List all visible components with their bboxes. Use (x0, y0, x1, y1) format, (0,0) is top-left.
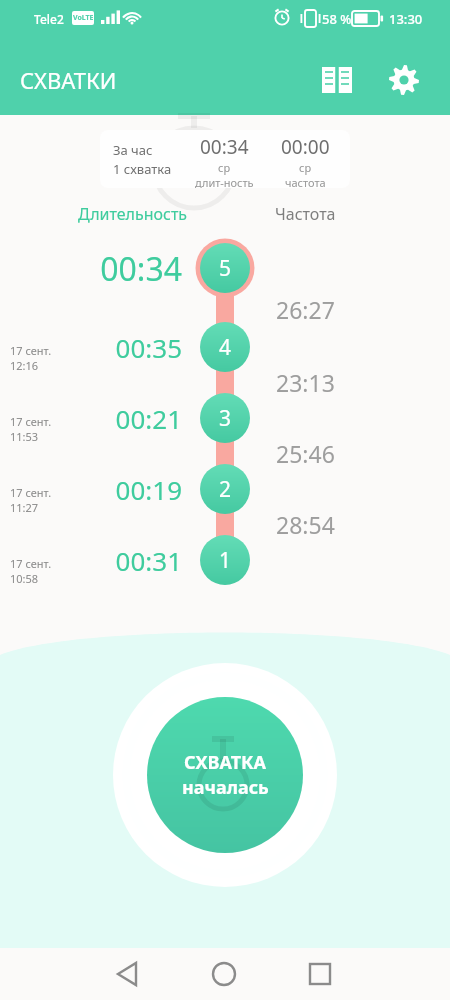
button[interactable]: Journal (311, 54, 363, 106)
staticText: 5 (219, 254, 232, 283)
staticText: 00:34 (200, 134, 249, 160)
staticText: 3 (219, 404, 232, 433)
staticText: Tele2 (34, 11, 64, 27)
staticText: 17 сент. (10, 414, 52, 429)
staticText: 17 сент. (10, 556, 52, 571)
button[interactable]: За час (100, 130, 350, 188)
staticText: 28:54 (276, 509, 335, 540)
staticText: 4 (219, 333, 232, 362)
staticText: 11:53 (10, 429, 39, 444)
staticText: ср (299, 160, 312, 175)
staticText: VoLTE (73, 13, 94, 23)
button[interactable]: Settings (378, 54, 430, 106)
staticText: 17 сент. (10, 485, 52, 500)
staticText: началась (182, 775, 269, 800)
staticText: 17 сент. (10, 343, 52, 358)
staticText: 00:35 (52, 330, 182, 365)
staticText: 1 схватка (113, 160, 172, 178)
staticText: 13:30 (389, 10, 423, 28)
button[interactable]: Contraction 4 (200, 322, 250, 372)
button[interactable]: Contraction 5 (200, 243, 250, 293)
button[interactable]: Recents (296, 950, 344, 998)
staticText: 2 (219, 475, 232, 504)
staticText: 00:00 (281, 134, 330, 160)
staticText: 25:46 (276, 438, 335, 469)
staticText: 00:34 (52, 247, 182, 291)
staticText: 11:27 (10, 500, 39, 515)
button[interactable]: Home (200, 950, 248, 998)
staticText: Длительность (78, 203, 188, 225)
staticText: длит-ность (195, 175, 254, 188)
staticText: частота (285, 175, 326, 188)
button[interactable]: Back (104, 950, 152, 998)
staticText: 10:58 (10, 571, 39, 586)
button[interactable]: Contraction 3 (200, 393, 250, 443)
button[interactable]: Contraction started (113, 663, 337, 887)
staticText: 00:19 (52, 472, 182, 507)
staticText: ср (218, 160, 231, 175)
staticText: 26:27 (276, 294, 335, 325)
button[interactable]: Contraction 2 (200, 464, 250, 514)
staticText: 23:13 (276, 367, 335, 398)
staticText: СХВАТКИ (20, 65, 117, 95)
staticText: СХВАТКА (184, 750, 267, 775)
staticText: За час (113, 141, 153, 159)
staticText: 00:31 (52, 543, 182, 578)
button[interactable]: Contraction 1 (200, 535, 250, 585)
staticText: 58 % (322, 10, 352, 28)
staticText: Частота (275, 203, 336, 225)
staticText: 1 (219, 546, 232, 575)
staticText: 12:16 (10, 358, 39, 373)
staticText: 00:21 (52, 401, 182, 436)
